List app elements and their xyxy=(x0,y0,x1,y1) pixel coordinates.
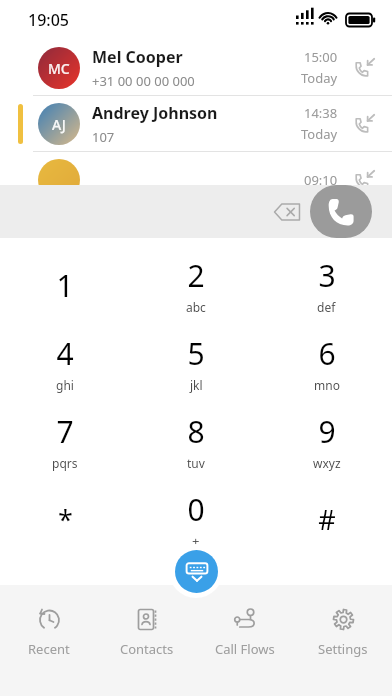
button[interactable]: Hide keypad xyxy=(175,550,218,593)
button[interactable]: 09:10 xyxy=(0,152,392,207)
button[interactable]: 8 xyxy=(130,402,261,480)
button[interactable]: 9 xyxy=(261,402,392,480)
staticText: Andrey Johnson xyxy=(92,102,218,124)
staticText: AJ xyxy=(52,115,66,134)
button[interactable]: Call Flows xyxy=(196,597,294,696)
staticText: wxyz xyxy=(313,455,341,471)
button[interactable]: MC xyxy=(0,40,392,95)
staticText: Today xyxy=(301,125,338,143)
staticText: +31 00 00 00 000 xyxy=(92,72,195,90)
staticText: 4 xyxy=(56,333,74,374)
staticText: 14:38 xyxy=(304,104,338,122)
button[interactable]: 1 xyxy=(0,246,130,324)
staticText: 2 xyxy=(187,255,205,296)
staticText: Call Flows xyxy=(215,640,275,658)
staticText: # xyxy=(318,501,336,538)
staticText: Settings xyxy=(318,640,368,658)
staticText: 7 xyxy=(56,411,74,452)
staticText: abc xyxy=(186,299,206,315)
staticText: Today xyxy=(301,69,338,87)
button[interactable]: Backspace xyxy=(270,195,304,229)
staticText: 3 xyxy=(318,255,336,296)
button[interactable]: Recent xyxy=(0,597,98,696)
staticText: tuv xyxy=(187,455,205,471)
staticText: 09:10 xyxy=(304,171,338,189)
staticText: 19:05 xyxy=(28,9,69,31)
button[interactable]: 3 xyxy=(261,246,392,324)
staticText: 107 xyxy=(92,128,115,146)
staticText: Contacts xyxy=(120,640,174,658)
staticText: 0 xyxy=(187,489,205,530)
staticText: 9 xyxy=(318,411,336,452)
staticText: ghi xyxy=(56,377,74,393)
button[interactable]: Settings xyxy=(294,597,392,696)
staticText: Recent xyxy=(28,640,70,658)
staticText: 5 xyxy=(187,333,205,374)
button[interactable]: 2 xyxy=(130,246,261,324)
button[interactable]: AJ xyxy=(0,96,392,151)
button[interactable]: 7 xyxy=(0,402,130,480)
staticText: mno xyxy=(314,377,340,393)
button[interactable]: 6 xyxy=(261,324,392,402)
staticText: 6 xyxy=(318,333,336,374)
button[interactable]: 0 xyxy=(130,480,261,558)
staticText: MC xyxy=(48,59,70,78)
staticText: jkl xyxy=(190,377,203,393)
staticText: 1 xyxy=(56,265,74,306)
button[interactable]: 4 xyxy=(0,324,130,402)
staticText: 15:00 xyxy=(304,48,338,66)
button[interactable]: Call xyxy=(310,185,372,238)
button[interactable]: * xyxy=(0,480,130,558)
staticText: def xyxy=(317,299,336,315)
staticText: * xyxy=(58,501,73,538)
button[interactable]: # xyxy=(261,480,392,558)
staticText: 8 xyxy=(187,411,205,452)
button[interactable]: 5 xyxy=(130,324,261,402)
staticText: pqrs xyxy=(52,455,78,471)
staticText: Mel Cooper xyxy=(92,46,183,68)
staticText: + xyxy=(192,532,200,550)
button[interactable]: Contacts xyxy=(98,597,196,696)
